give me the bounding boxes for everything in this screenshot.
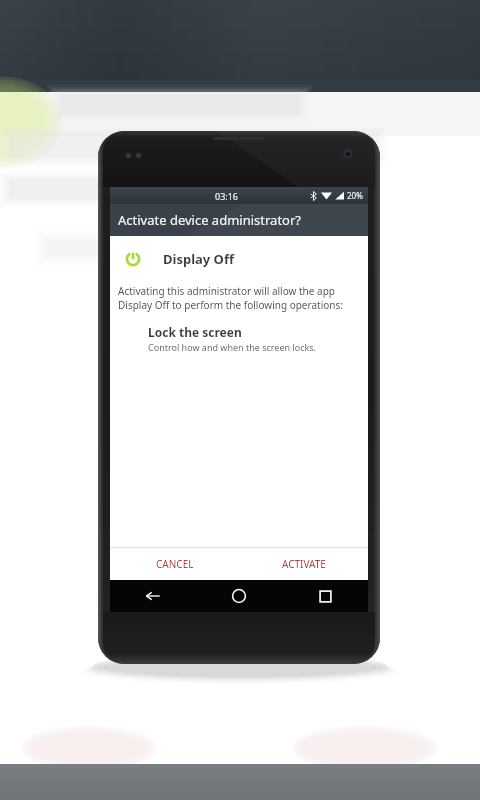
staticText: Activate device administrator? (118, 211, 301, 229)
button[interactable]: Back (110, 580, 196, 612)
staticText: Activating this administrator will allow… (118, 284, 360, 312)
button[interactable]: Recent apps (282, 580, 368, 612)
staticText: 20% (347, 190, 363, 201)
button[interactable]: CANCEL (110, 548, 239, 580)
staticText: Lock the screen (148, 324, 242, 340)
staticText: Control how and when the screen locks. (148, 341, 316, 353)
staticText: 03:16 (215, 190, 239, 202)
staticText: CANCEL (156, 557, 194, 571)
staticText: ACTIVATE (282, 557, 326, 571)
staticText: Display Off (163, 250, 234, 268)
button[interactable]: ACTIVATE (239, 548, 368, 580)
button[interactable]: Home (196, 580, 282, 612)
